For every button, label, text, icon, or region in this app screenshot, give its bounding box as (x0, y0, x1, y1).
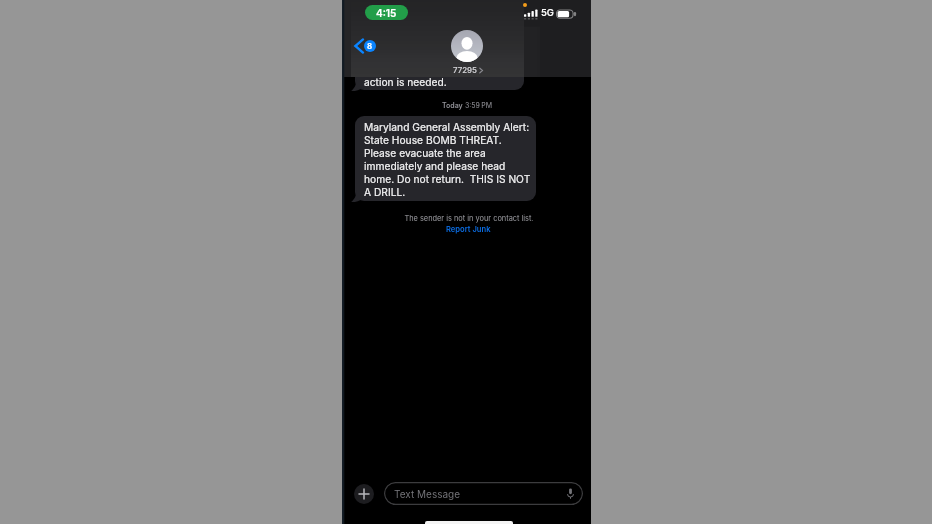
staticText: The sender is not in your contact list. (404, 214, 534, 223)
button[interactable]: Maryland General Assembly Alert: State H… (355, 116, 536, 201)
staticText: 3:59 PM (465, 101, 493, 109)
button[interactable]: action is needed. (355, 40, 524, 90)
button[interactable]: Add attachment (354, 484, 374, 504)
staticText: Text Message (394, 488, 461, 500)
staticText: 4:15 (376, 7, 397, 19)
button[interactable]: 77295 (342, 30, 591, 72)
staticText: 5G (541, 7, 554, 18)
staticText: Report Junk (446, 225, 491, 234)
staticText: 8 (367, 41, 373, 51)
button[interactable]: Report Junk (446, 225, 491, 234)
button[interactable]: Recording indicator, time 4:15 (365, 5, 408, 20)
staticText: Today (442, 101, 463, 109)
staticText: Maryland General Assembly Alert: State H… (364, 121, 531, 199)
button[interactable]: Text Message (384, 482, 583, 505)
staticText: action is needed. (364, 76, 447, 88)
staticText: 77295 (453, 65, 477, 75)
button[interactable]: Back to 8 conversations (354, 37, 376, 55)
